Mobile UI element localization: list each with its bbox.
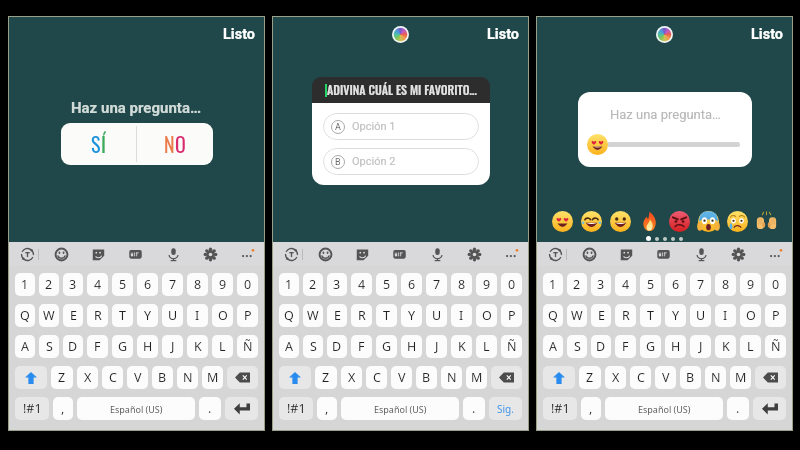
button[interactable]: A <box>323 113 479 140</box>
button[interactable]: N <box>177 366 198 389</box>
button[interactable]: Español (US) <box>341 397 459 420</box>
button[interactable]: P <box>501 304 522 327</box>
button[interactable]: O <box>476 304 497 327</box>
button[interactable]: M <box>202 366 223 389</box>
button[interactable]: 6 <box>401 273 422 296</box>
button[interactable]: F <box>615 335 636 358</box>
button[interactable]: B <box>680 366 701 389</box>
button[interactable]: H <box>401 335 422 358</box>
button[interactable]: Backspace <box>755 366 786 389</box>
button[interactable]: N <box>705 366 726 389</box>
button[interactable]: N <box>441 366 462 389</box>
button[interactable]: Enter <box>225 397 258 420</box>
button[interactable]: 1 <box>543 273 563 296</box>
button[interactable]: J <box>690 335 711 358</box>
button[interactable]: Y <box>137 304 158 327</box>
button[interactable]: Shift <box>15 366 47 389</box>
button[interactable]: . <box>199 397 221 420</box>
button[interactable]: B <box>323 148 479 175</box>
button[interactable]: 7 <box>426 273 447 296</box>
button[interactable]: S <box>61 123 136 165</box>
button[interactable]: Stickers <box>617 245 635 263</box>
button[interactable]: !#1 <box>543 397 577 420</box>
button[interactable]: 0 <box>765 273 786 296</box>
button[interactable]: , <box>53 397 73 420</box>
button[interactable]: Backspace <box>227 366 258 389</box>
button[interactable]: Color picker <box>392 26 409 43</box>
button[interactable]: H <box>665 335 686 358</box>
button[interactable]: M <box>730 366 751 389</box>
button[interactable]: G <box>112 335 133 358</box>
button[interactable]: 6 <box>665 273 686 296</box>
button[interactable]: Emoji <box>316 245 334 263</box>
button[interactable]: Shift <box>543 366 575 389</box>
button[interactable]: More <box>766 245 784 263</box>
button[interactable]: N <box>137 123 213 165</box>
button[interactable]: T <box>376 304 397 327</box>
button[interactable]: GIF <box>390 245 408 263</box>
button[interactable]: R <box>351 304 372 327</box>
button[interactable]: M <box>466 366 487 389</box>
button[interactable]: A <box>15 335 35 358</box>
button[interactable]: U <box>690 304 711 327</box>
button[interactable]: F <box>351 335 372 358</box>
button[interactable] <box>552 211 573 232</box>
button[interactable]: 1 <box>15 273 35 296</box>
button[interactable]: Español (US) <box>77 397 195 420</box>
button[interactable]: Settings <box>465 245 483 263</box>
button[interactable]: Q <box>279 304 299 327</box>
button[interactable]: 2 <box>567 273 587 296</box>
button[interactable]: Slider <box>587 134 608 155</box>
button[interactable]: Stickers <box>89 245 107 263</box>
button[interactable]: . <box>727 397 749 420</box>
button[interactable]: E <box>63 304 83 327</box>
button[interactable]: Backspace <box>491 366 522 389</box>
button[interactable]: 4 <box>615 273 636 296</box>
button[interactable]: 3 <box>63 273 83 296</box>
button[interactable]: I <box>715 304 736 327</box>
button[interactable]: Español (US) <box>605 397 723 420</box>
button[interactable]: E <box>591 304 611 327</box>
button[interactable]: GIF <box>126 245 144 263</box>
button[interactable]: 2 <box>39 273 59 296</box>
button[interactable]: S <box>303 335 323 358</box>
button[interactable]: B <box>416 366 437 389</box>
button[interactable]: Z <box>51 366 73 389</box>
button[interactable]: C <box>102 366 123 389</box>
button[interactable]: 8 <box>451 273 472 296</box>
button[interactable] <box>669 211 690 232</box>
button[interactable]: A <box>543 335 563 358</box>
button[interactable]: 8 <box>187 273 208 296</box>
button[interactable]: B <box>152 366 173 389</box>
button[interactable]: J <box>426 335 447 358</box>
button[interactable]: 2 <box>303 273 323 296</box>
button[interactable]: 4 <box>87 273 108 296</box>
button[interactable]: H <box>137 335 158 358</box>
button[interactable]: X <box>77 366 98 389</box>
button[interactable]: GIF <box>654 245 672 263</box>
button[interactable] <box>581 211 602 232</box>
button[interactable]: , <box>317 397 337 420</box>
button[interactable]: K <box>451 335 472 358</box>
button[interactable]: Emoji <box>580 245 598 263</box>
button[interactable]: Enter <box>753 397 786 420</box>
button[interactable]: Settings <box>201 245 219 263</box>
button[interactable]: K <box>187 335 208 358</box>
button[interactable]: J <box>162 335 183 358</box>
button[interactable]: R <box>87 304 108 327</box>
button[interactable]: W <box>303 304 323 327</box>
button[interactable] <box>756 211 777 232</box>
button[interactable]: Stickers <box>353 245 371 263</box>
button[interactable]: G <box>376 335 397 358</box>
button[interactable]: Emoji <box>52 245 70 263</box>
button[interactable]: 0 <box>501 273 522 296</box>
button[interactable]: 0 <box>237 273 258 296</box>
button[interactable]: W <box>567 304 587 327</box>
button[interactable]: Z <box>315 366 337 389</box>
button[interactable]: 5 <box>112 273 133 296</box>
button[interactable]: 9 <box>212 273 233 296</box>
button[interactable]: P <box>765 304 786 327</box>
button[interactable]: More <box>502 245 520 263</box>
button[interactable]: T <box>640 304 661 327</box>
button[interactable]: Listo <box>751 26 784 43</box>
